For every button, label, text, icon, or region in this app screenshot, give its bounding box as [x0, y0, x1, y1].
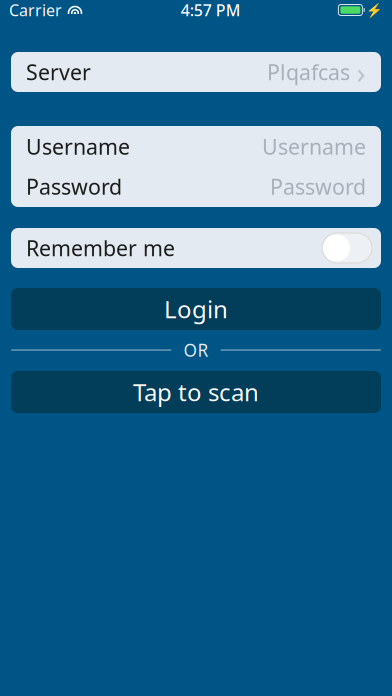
staticText: › [356, 52, 365, 91]
button[interactable]: Remember me [11, 228, 381, 268]
staticText: Remember me [26, 234, 175, 262]
button[interactable]: Username [11, 126, 381, 166]
staticText: Username [262, 132, 366, 161]
staticText: Username [26, 132, 130, 161]
staticText: OR [183, 338, 208, 361]
staticText: ⚡ [366, 2, 383, 18]
staticText: Plqafcas [267, 58, 350, 86]
staticText: Login [164, 293, 228, 325]
button[interactable]: Password [11, 166, 381, 206]
staticText: Password [26, 172, 122, 201]
button[interactable]: Tap to scan [11, 371, 381, 413]
staticText: Server [26, 58, 91, 86]
button[interactable]: Server [11, 52, 381, 92]
button[interactable]: Login [11, 288, 381, 330]
staticText: Tap to scan [133, 376, 259, 408]
staticText: 4:57 PM [181, 0, 241, 21]
staticText: Password [270, 172, 366, 201]
staticText: Carrier [9, 0, 62, 21]
